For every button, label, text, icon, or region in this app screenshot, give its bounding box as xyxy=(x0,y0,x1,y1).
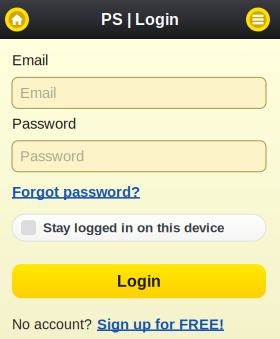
button[interactable]: Sign up for FREE! xyxy=(97,316,224,333)
button[interactable]: Menu xyxy=(246,7,280,31)
button[interactable]: Login xyxy=(12,264,266,298)
staticText: No account? xyxy=(12,316,92,332)
staticText: Email xyxy=(12,52,48,68)
staticText: Stay logged in on this device xyxy=(43,220,224,235)
staticText: PS | Login xyxy=(101,11,179,28)
button[interactable]: Forgot password? xyxy=(12,172,140,200)
button[interactable]: Stay logged in on this device xyxy=(12,214,266,241)
staticText: Sign up for FREE! xyxy=(97,316,224,333)
staticText: Login xyxy=(117,272,161,290)
staticText: Password xyxy=(12,115,76,132)
button[interactable]: Home xyxy=(0,7,29,31)
staticText: Forgot password? xyxy=(12,184,140,200)
staticText: Email xyxy=(20,85,56,101)
staticText: Password xyxy=(20,148,84,164)
